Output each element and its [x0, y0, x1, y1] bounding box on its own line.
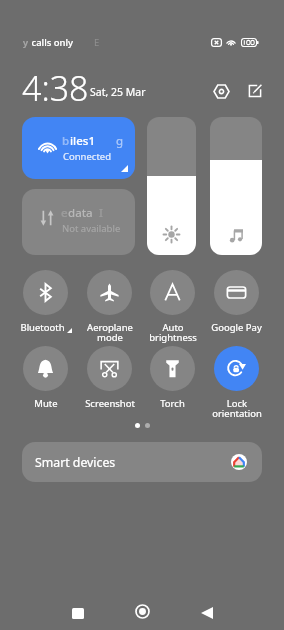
- button[interactable]: Google Pay: [205, 270, 268, 334]
- button[interactable]: Settings: [208, 78, 234, 104]
- button[interactable]: [210, 117, 262, 255]
- button[interactable]: Lock orientation: [205, 346, 268, 420]
- button[interactable]: [147, 117, 196, 255]
- staticText: 4:38: [22, 65, 89, 111]
- staticText: Not available: [62, 222, 121, 235]
- button[interactable]: Smart devices: [22, 442, 262, 482]
- staticText: Smart devices: [35, 454, 116, 471]
- staticText: Sat, 25 Mar: [90, 85, 146, 99]
- staticText: I: [93, 205, 103, 221]
- button[interactable]: e: [22, 189, 135, 255]
- staticText: E: [94, 36, 100, 49]
- staticText: Torch: [160, 397, 185, 410]
- staticText: Google Pay: [211, 321, 262, 334]
- button[interactable]: b: [22, 117, 135, 179]
- button[interactable]: Torch: [141, 346, 204, 410]
- staticText: iles1: [70, 133, 95, 149]
- staticText: Bluetooth: [20, 321, 65, 334]
- button[interactable]: Aeroplane mode: [78, 270, 141, 344]
- staticText: y: [23, 36, 29, 49]
- staticText: b: [62, 133, 70, 149]
- button[interactable]: Auto brightness: [141, 270, 204, 344]
- staticText: Connected: [63, 150, 112, 163]
- button[interactable]: Edit quick settings: [242, 78, 268, 104]
- staticText: Lock orientation: [212, 397, 262, 420]
- staticText: Screenshot: [85, 397, 135, 410]
- staticText: data: [68, 205, 93, 221]
- staticText: Mute: [34, 397, 58, 410]
- button[interactable]: Bluetooth: [14, 270, 77, 334]
- button[interactable]: Mute: [14, 346, 77, 410]
- button[interactable]: Home: [135, 604, 150, 619]
- button[interactable]: Recents: [72, 608, 84, 619]
- staticText: g: [116, 133, 124, 149]
- button[interactable]: Back: [201, 607, 213, 619]
- staticText: Auto brightness: [149, 321, 197, 344]
- button[interactable]: Screenshot: [78, 346, 141, 410]
- staticText: Aeroplane mode: [87, 321, 133, 344]
- staticText: calls only: [29, 36, 74, 49]
- staticText: e: [61, 205, 68, 221]
